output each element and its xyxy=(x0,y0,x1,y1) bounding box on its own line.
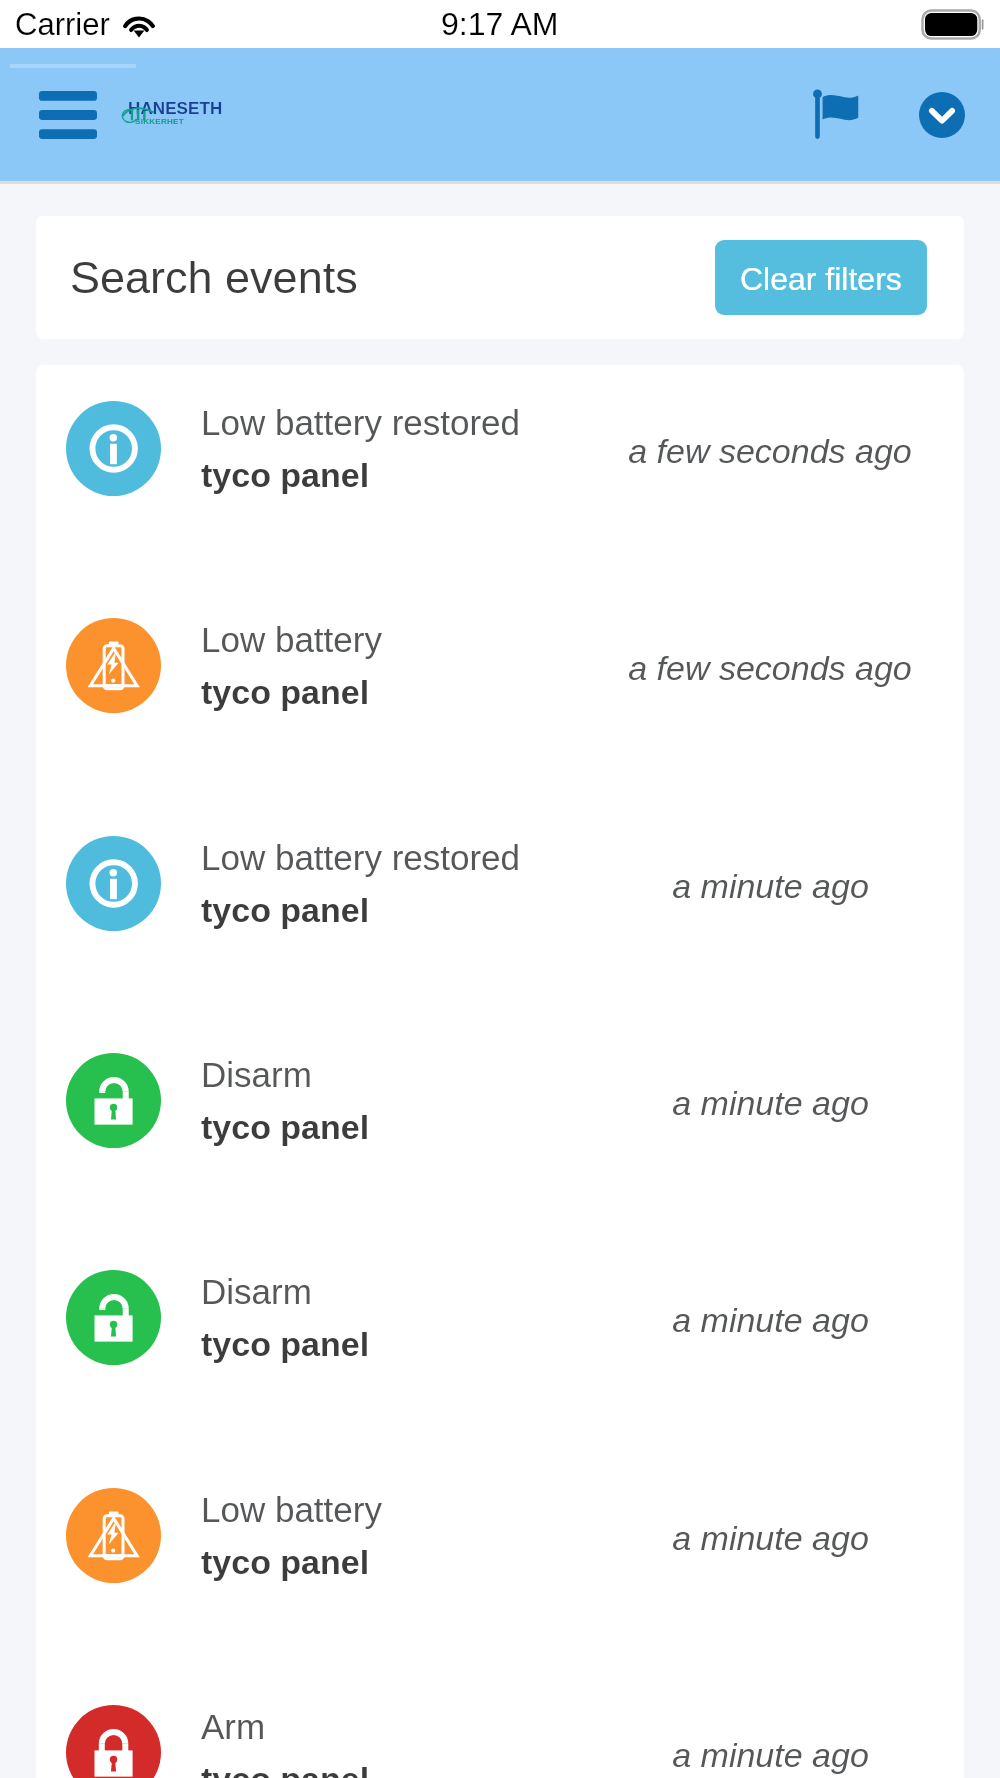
button[interactable]: Disarm xyxy=(36,1017,964,1234)
button[interactable]: Disarm xyxy=(36,1234,964,1452)
staticText: Low battery restored xyxy=(201,403,521,442)
staticText: HANESETH xyxy=(128,99,223,118)
staticText: 9:17 AM xyxy=(441,6,559,42)
button[interactable]: Arm xyxy=(36,1669,964,1778)
staticText: a minute ago xyxy=(672,867,869,905)
staticText: tyco panel xyxy=(201,891,370,929)
staticText: tyco panel xyxy=(201,1543,370,1581)
staticText: Low battery xyxy=(201,620,382,659)
staticText: a minute ago xyxy=(672,1519,869,1557)
button[interactable]: Low battery restored xyxy=(36,800,964,1017)
staticText: Disarm xyxy=(201,1272,312,1311)
button[interactable]: Low battery xyxy=(36,582,964,800)
staticText: Clear filters xyxy=(740,261,902,297)
staticText: tyco panel xyxy=(201,1760,370,1778)
button[interactable]: Flag xyxy=(794,65,894,165)
button[interactable]: Clear filters xyxy=(715,240,927,315)
staticText: a minute ago xyxy=(672,1301,869,1339)
staticText: Low battery restored xyxy=(201,838,521,877)
staticText: tyco panel xyxy=(201,1325,370,1363)
staticText: a minute ago xyxy=(672,1736,869,1774)
staticText: Low battery xyxy=(201,1490,382,1529)
staticText: Carrier xyxy=(15,7,110,42)
staticText: a few seconds ago xyxy=(628,649,912,687)
button[interactable]: Expand xyxy=(894,67,990,163)
staticText: tyco panel xyxy=(201,673,370,711)
staticText: tyco panel xyxy=(201,1108,370,1146)
staticText: SIKKERHET xyxy=(135,117,184,126)
staticText: Search events xyxy=(70,252,358,302)
button[interactable]: Low battery restored xyxy=(36,365,964,582)
button[interactable]: Open navigation menu xyxy=(22,65,114,165)
staticText: tyco panel xyxy=(201,456,370,494)
button[interactable]: Low battery xyxy=(36,1452,964,1669)
staticText: Arm xyxy=(201,1707,266,1746)
staticText: a minute ago xyxy=(672,1084,869,1122)
staticText: a few seconds ago xyxy=(628,432,912,470)
staticText: Disarm xyxy=(201,1055,312,1094)
